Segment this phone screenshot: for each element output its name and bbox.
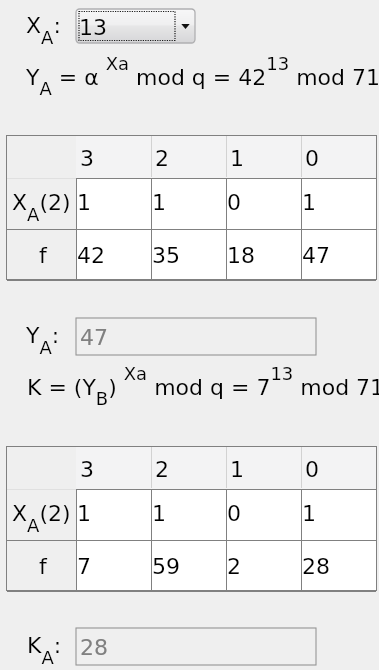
staticText: 0 [227, 501, 241, 527]
staticText: YA: [26, 323, 60, 358]
staticText: f [39, 554, 47, 580]
button[interactable]: Result 28 [76, 628, 316, 665]
staticText: XA: [26, 13, 61, 48]
staticText: 18 [227, 243, 255, 269]
staticText: 2 [155, 146, 169, 172]
staticText: XA(2) [12, 501, 71, 536]
staticText: 7 [77, 554, 91, 580]
staticText: K = (YB) Xa mod q = 713 mod 71 [27, 363, 379, 409]
staticText: 1 [230, 146, 244, 172]
staticText: KA: [27, 633, 62, 668]
staticText: 3 [80, 457, 94, 483]
staticText: 28 [302, 554, 330, 580]
staticText: 1 [152, 190, 166, 216]
staticText: f [39, 243, 47, 269]
staticText: 13 [79, 15, 107, 41]
staticText: 2 [227, 554, 241, 580]
button[interactable]: Choose private key exponent [76, 9, 195, 43]
staticText: XA(2) [12, 190, 71, 225]
staticText: 3 [80, 146, 94, 172]
button[interactable]: Result 47 [76, 318, 316, 355]
staticText: 42 [77, 243, 105, 269]
staticText: 1 [152, 501, 166, 527]
staticText: 0 [227, 190, 241, 216]
staticText: 35 [152, 243, 180, 269]
staticText: 1 [302, 501, 316, 527]
staticText: 1 [230, 457, 244, 483]
staticText: 1 [77, 501, 91, 527]
staticText: 1 [302, 190, 316, 216]
staticText: 2 [155, 457, 169, 483]
staticText: 1 [77, 190, 91, 216]
staticText: 0 [305, 457, 319, 483]
staticText: 28 [80, 635, 108, 661]
staticText: 47 [80, 325, 108, 351]
staticText: YA = α Xa mod q = 4213 mod 71 [26, 53, 379, 99]
staticText: 0 [305, 146, 319, 172]
staticText: 59 [152, 554, 180, 580]
staticText: 47 [302, 243, 330, 269]
